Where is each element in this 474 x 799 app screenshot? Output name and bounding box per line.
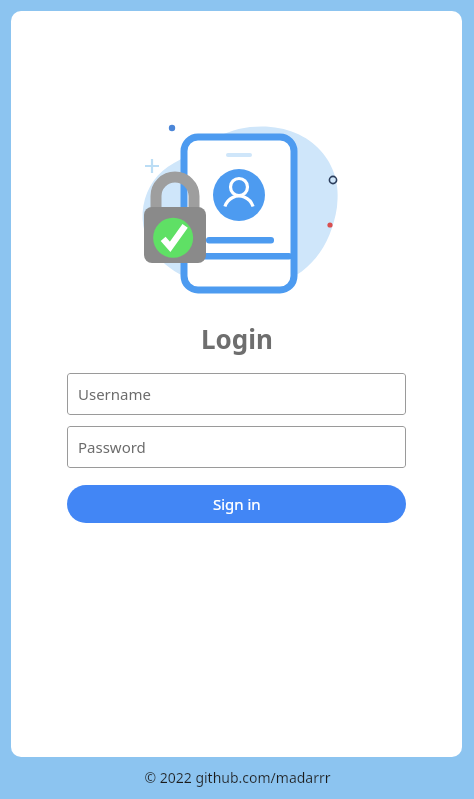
staticText: Login [201,321,273,356]
staticText: Password [78,437,146,457]
staticText: Sign in [213,494,261,514]
staticText: Username [78,384,151,404]
staticText: © 2022 github.com/madarrr [144,768,331,787]
button[interactable]: Sign in [67,485,406,523]
button[interactable]: Password [67,426,406,468]
button[interactable]: Username [67,373,406,415]
